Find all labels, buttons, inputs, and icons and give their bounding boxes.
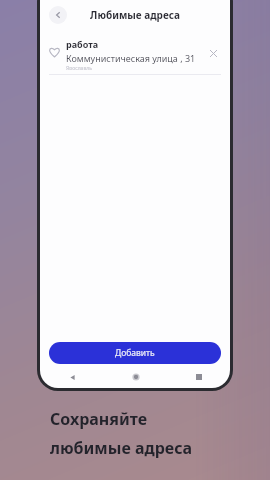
staticText: Сохраняйте bbox=[50, 408, 148, 430]
staticText: Любимые адреса bbox=[90, 8, 180, 22]
button[interactable]: Back bbox=[49, 6, 67, 24]
staticText: Добавить bbox=[115, 347, 155, 359]
staticText: работа bbox=[66, 38, 99, 50]
staticText: Коммунистическая улица , 31 bbox=[66, 52, 196, 64]
button[interactable]: Remove address bbox=[205, 45, 221, 61]
button[interactable]: Добавить bbox=[49, 342, 221, 364]
staticText: любимые адреса bbox=[50, 437, 193, 459]
staticText: Ярославль bbox=[66, 65, 92, 70]
button[interactable]: Home bbox=[104, 369, 167, 385]
button[interactable]: работа bbox=[40, 36, 230, 70]
button[interactable]: Back bbox=[40, 369, 104, 385]
button[interactable]: Recent apps bbox=[167, 369, 230, 385]
